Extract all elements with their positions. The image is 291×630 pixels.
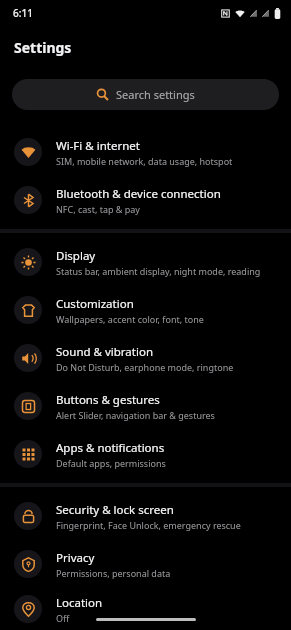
button[interactable]: Wi-Fi & internet: [0, 128, 291, 176]
staticText: Apps & notifications: [56, 440, 165, 456]
staticText: Off: [56, 612, 70, 624]
button[interactable]: Privacy: [0, 540, 291, 588]
staticText: SIM, mobile network, data usage, hotspot: [56, 155, 233, 167]
staticText: Security & lock screen: [56, 502, 174, 518]
button[interactable]: Security & lock screen: [0, 492, 291, 540]
button[interactable]: Customization: [0, 286, 291, 334]
button[interactable]: Search settings: [12, 79, 279, 110]
staticText: Bluetooth & device connection: [56, 186, 221, 202]
button[interactable]: Bluetooth & device connection: [0, 176, 291, 224]
staticText: Wi-Fi & internet: [56, 138, 140, 154]
staticText: Wallpapers, accent color, font, tone: [56, 313, 204, 325]
staticText: Status bar, ambient display, night mode,…: [56, 265, 281, 277]
staticText: Sound & vibration: [56, 344, 153, 360]
button[interactable]: Sound & vibration: [0, 334, 291, 382]
staticText: Default apps, permissions: [56, 457, 166, 469]
button[interactable]: Location: [0, 588, 291, 630]
staticText: 6:11: [13, 6, 33, 20]
staticText: Settings: [14, 38, 72, 57]
staticText: Buttons & gestures: [56, 392, 160, 408]
button[interactable]: Display: [0, 238, 291, 286]
button[interactable]: Buttons & gestures: [0, 382, 291, 430]
staticText: Alert Slider, navigation bar & gestures: [56, 409, 215, 421]
staticText: Customization: [56, 296, 134, 312]
staticText: Privacy: [56, 550, 95, 566]
staticText: NFC, cast, tap & pay: [56, 203, 140, 215]
staticText: Permissions, personal data: [56, 567, 171, 579]
button[interactable]: Apps & notifications: [0, 430, 291, 478]
staticText: Do Not Disturb, earphone mode, ringtone: [56, 361, 234, 373]
staticText: Display: [56, 248, 96, 264]
staticText: Fingerprint, Face Unlock, emergency resc…: [56, 519, 241, 531]
staticText: Search settings: [116, 87, 195, 102]
staticText: Location: [56, 595, 103, 611]
